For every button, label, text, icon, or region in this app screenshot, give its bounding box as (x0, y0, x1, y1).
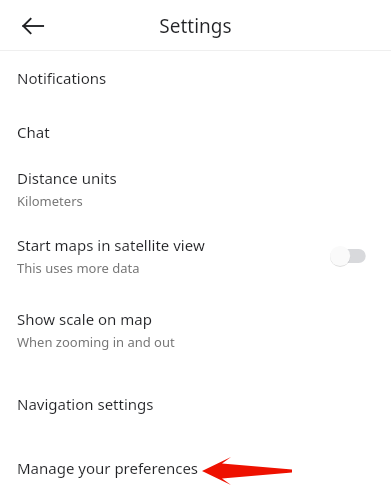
staticText: Manage your preferences (17, 458, 199, 478)
button[interactable]: Navigation settings (0, 367, 391, 441)
staticText: Start maps in satellite view (17, 235, 205, 255)
staticText: Show scale on map (17, 309, 152, 329)
button[interactable]: Start maps in satellite view (0, 219, 391, 293)
button[interactable]: Distance units (0, 159, 391, 219)
staticText: Kilometers (17, 192, 83, 210)
staticText: When zooming in and out (17, 333, 175, 351)
staticText: Distance units (17, 168, 117, 188)
staticText: Settings (60, 13, 331, 39)
button[interactable]: Toggle satellite view (327, 242, 371, 270)
button[interactable]: Back (13, 6, 53, 46)
staticText: Chat (17, 122, 50, 142)
button[interactable]: Show scale on map (0, 293, 391, 367)
button[interactable]: Manage your preferences (0, 441, 391, 495)
staticText: Notifications (17, 68, 107, 88)
button[interactable]: Chat (0, 105, 391, 159)
staticText: This uses more data (17, 259, 140, 277)
button[interactable]: Notifications (0, 51, 391, 105)
staticText: Navigation settings (17, 394, 154, 414)
